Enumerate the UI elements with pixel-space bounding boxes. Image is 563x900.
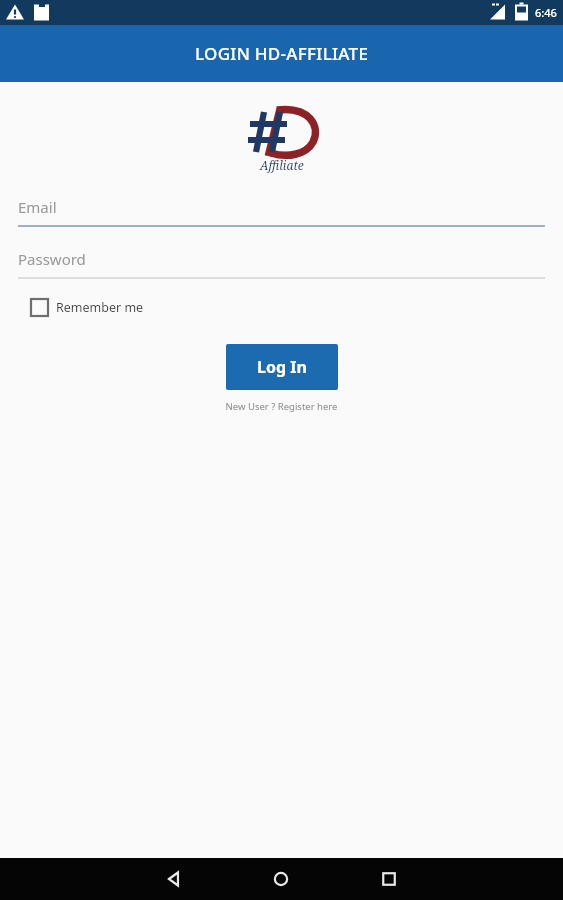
staticText: Email	[18, 197, 57, 217]
staticText: Log In	[257, 356, 307, 378]
button[interactable]: Password	[0, 249, 563, 279]
staticText: 6:46	[535, 5, 557, 20]
button[interactable]: Remember me	[0, 295, 563, 320]
staticText: Remember me	[56, 299, 144, 316]
staticText: LOGIN HD-AFFILIATE	[195, 42, 369, 65]
button[interactable]: New User ? Register here	[0, 399, 563, 414]
staticText: Affiliate	[260, 157, 304, 173]
button[interactable]: Log In	[226, 344, 338, 390]
button[interactable]: Home	[227, 858, 335, 900]
staticText: Password	[18, 249, 86, 269]
button[interactable]: Email	[0, 197, 563, 227]
button[interactable]: Recent apps	[335, 858, 443, 900]
button[interactable]: Back	[120, 858, 227, 900]
